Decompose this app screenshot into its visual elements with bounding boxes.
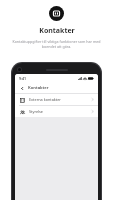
button[interactable]: Back — [15, 83, 98, 93]
button[interactable]: Styrelse — [15, 106, 98, 117]
staticText: Styrelse — [29, 109, 91, 114]
staticText: Kontakter — [28, 85, 49, 91]
button[interactable]: Kontakter app icon — [49, 6, 64, 21]
staticText: 9:41 — [19, 76, 27, 81]
button[interactable]: Back — [19, 85, 25, 91]
staticText: Externa kontakter — [29, 97, 91, 102]
staticText: Kontaktuppgifter till viktiga funktioner… — [11, 39, 102, 49]
staticText: Kontakter — [39, 26, 75, 36]
button[interactable]: Externa kontakter — [15, 94, 98, 105]
